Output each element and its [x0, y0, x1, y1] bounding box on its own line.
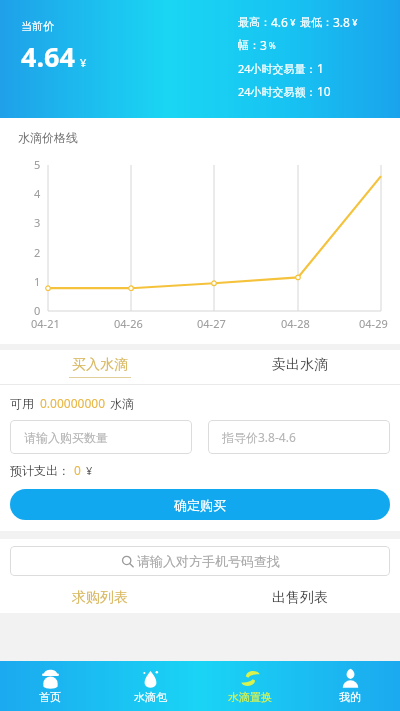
staticText: 预计支出： [10, 463, 70, 478]
staticText: 1 [317, 60, 324, 76]
staticText: 2 [34, 245, 41, 260]
staticText: 4.6 [271, 14, 288, 30]
staticText: 04-27 [197, 316, 226, 331]
staticText: 04-28 [281, 316, 310, 331]
staticText: 1 [34, 274, 41, 289]
staticText: 当前价 [21, 19, 54, 33]
staticText: 水滴价格线 [18, 130, 78, 145]
button[interactable]: 请输入购买数量 [10, 420, 192, 454]
staticText: 水滴包 [134, 690, 167, 704]
staticText: 幅： [238, 38, 260, 52]
staticText: 24小时交易额： [238, 84, 317, 99]
staticText: 0.00000000 [40, 395, 105, 411]
staticText: 可用 [10, 396, 34, 411]
button[interactable]: 卖出水滴 [200, 350, 400, 384]
button[interactable]: 买入水滴 [0, 350, 200, 384]
staticText: 4.64 [21, 38, 75, 75]
button[interactable]: 我的 [300, 661, 400, 711]
button[interactable]: 求购列表 [0, 583, 200, 613]
staticText: 首页 [39, 690, 61, 704]
staticText: 我的 [339, 690, 361, 704]
staticText: 04-26 [114, 316, 143, 331]
staticText: 5 [34, 157, 41, 172]
staticText: 04-29 [359, 316, 388, 331]
button[interactable]: 确定购买 [10, 489, 390, 520]
staticText: ¥ [350, 16, 358, 28]
staticText: 10 [317, 83, 331, 99]
staticText: 最高： [238, 15, 271, 29]
button[interactable]: 水滴置换 [200, 661, 300, 711]
staticText: ¥ [80, 55, 87, 70]
staticText: 买入水滴 [72, 356, 128, 374]
staticText: 请输入购买数量 [24, 430, 108, 445]
staticText: ¥ [86, 463, 93, 478]
staticText: 水滴置换 [228, 690, 272, 704]
staticText: 指导价3.8-4.6 [222, 429, 296, 445]
button[interactable]: 指导价3.8-4.6 [208, 420, 390, 454]
staticText: 3.8 [333, 14, 350, 30]
staticText: 04-21 [31, 316, 60, 331]
button[interactable]: 首页 [0, 661, 100, 711]
staticText: 0 [34, 303, 41, 318]
staticText: 4 [34, 186, 41, 201]
staticText: 卖出水滴 [272, 356, 328, 374]
staticText: 0 [74, 462, 81, 478]
staticText: 请输入对方手机号码查找 [137, 553, 280, 569]
button[interactable]: 水滴包 [100, 661, 200, 711]
staticText: 水滴 [110, 396, 134, 411]
button[interactable]: 出售列表 [200, 583, 400, 613]
staticText: % [267, 40, 276, 51]
staticText: ¥ [288, 16, 298, 28]
staticText: 24小时交易量： [238, 61, 317, 76]
staticText: 3 [34, 215, 41, 230]
staticText: 最低： [300, 15, 333, 29]
staticText: 求购列表 [72, 589, 128, 607]
staticText: 3 [260, 37, 267, 53]
staticText: 确定购买 [174, 497, 226, 513]
button[interactable]: 请输入对方手机号码查找 [10, 546, 390, 576]
staticText: 出售列表 [272, 589, 328, 607]
